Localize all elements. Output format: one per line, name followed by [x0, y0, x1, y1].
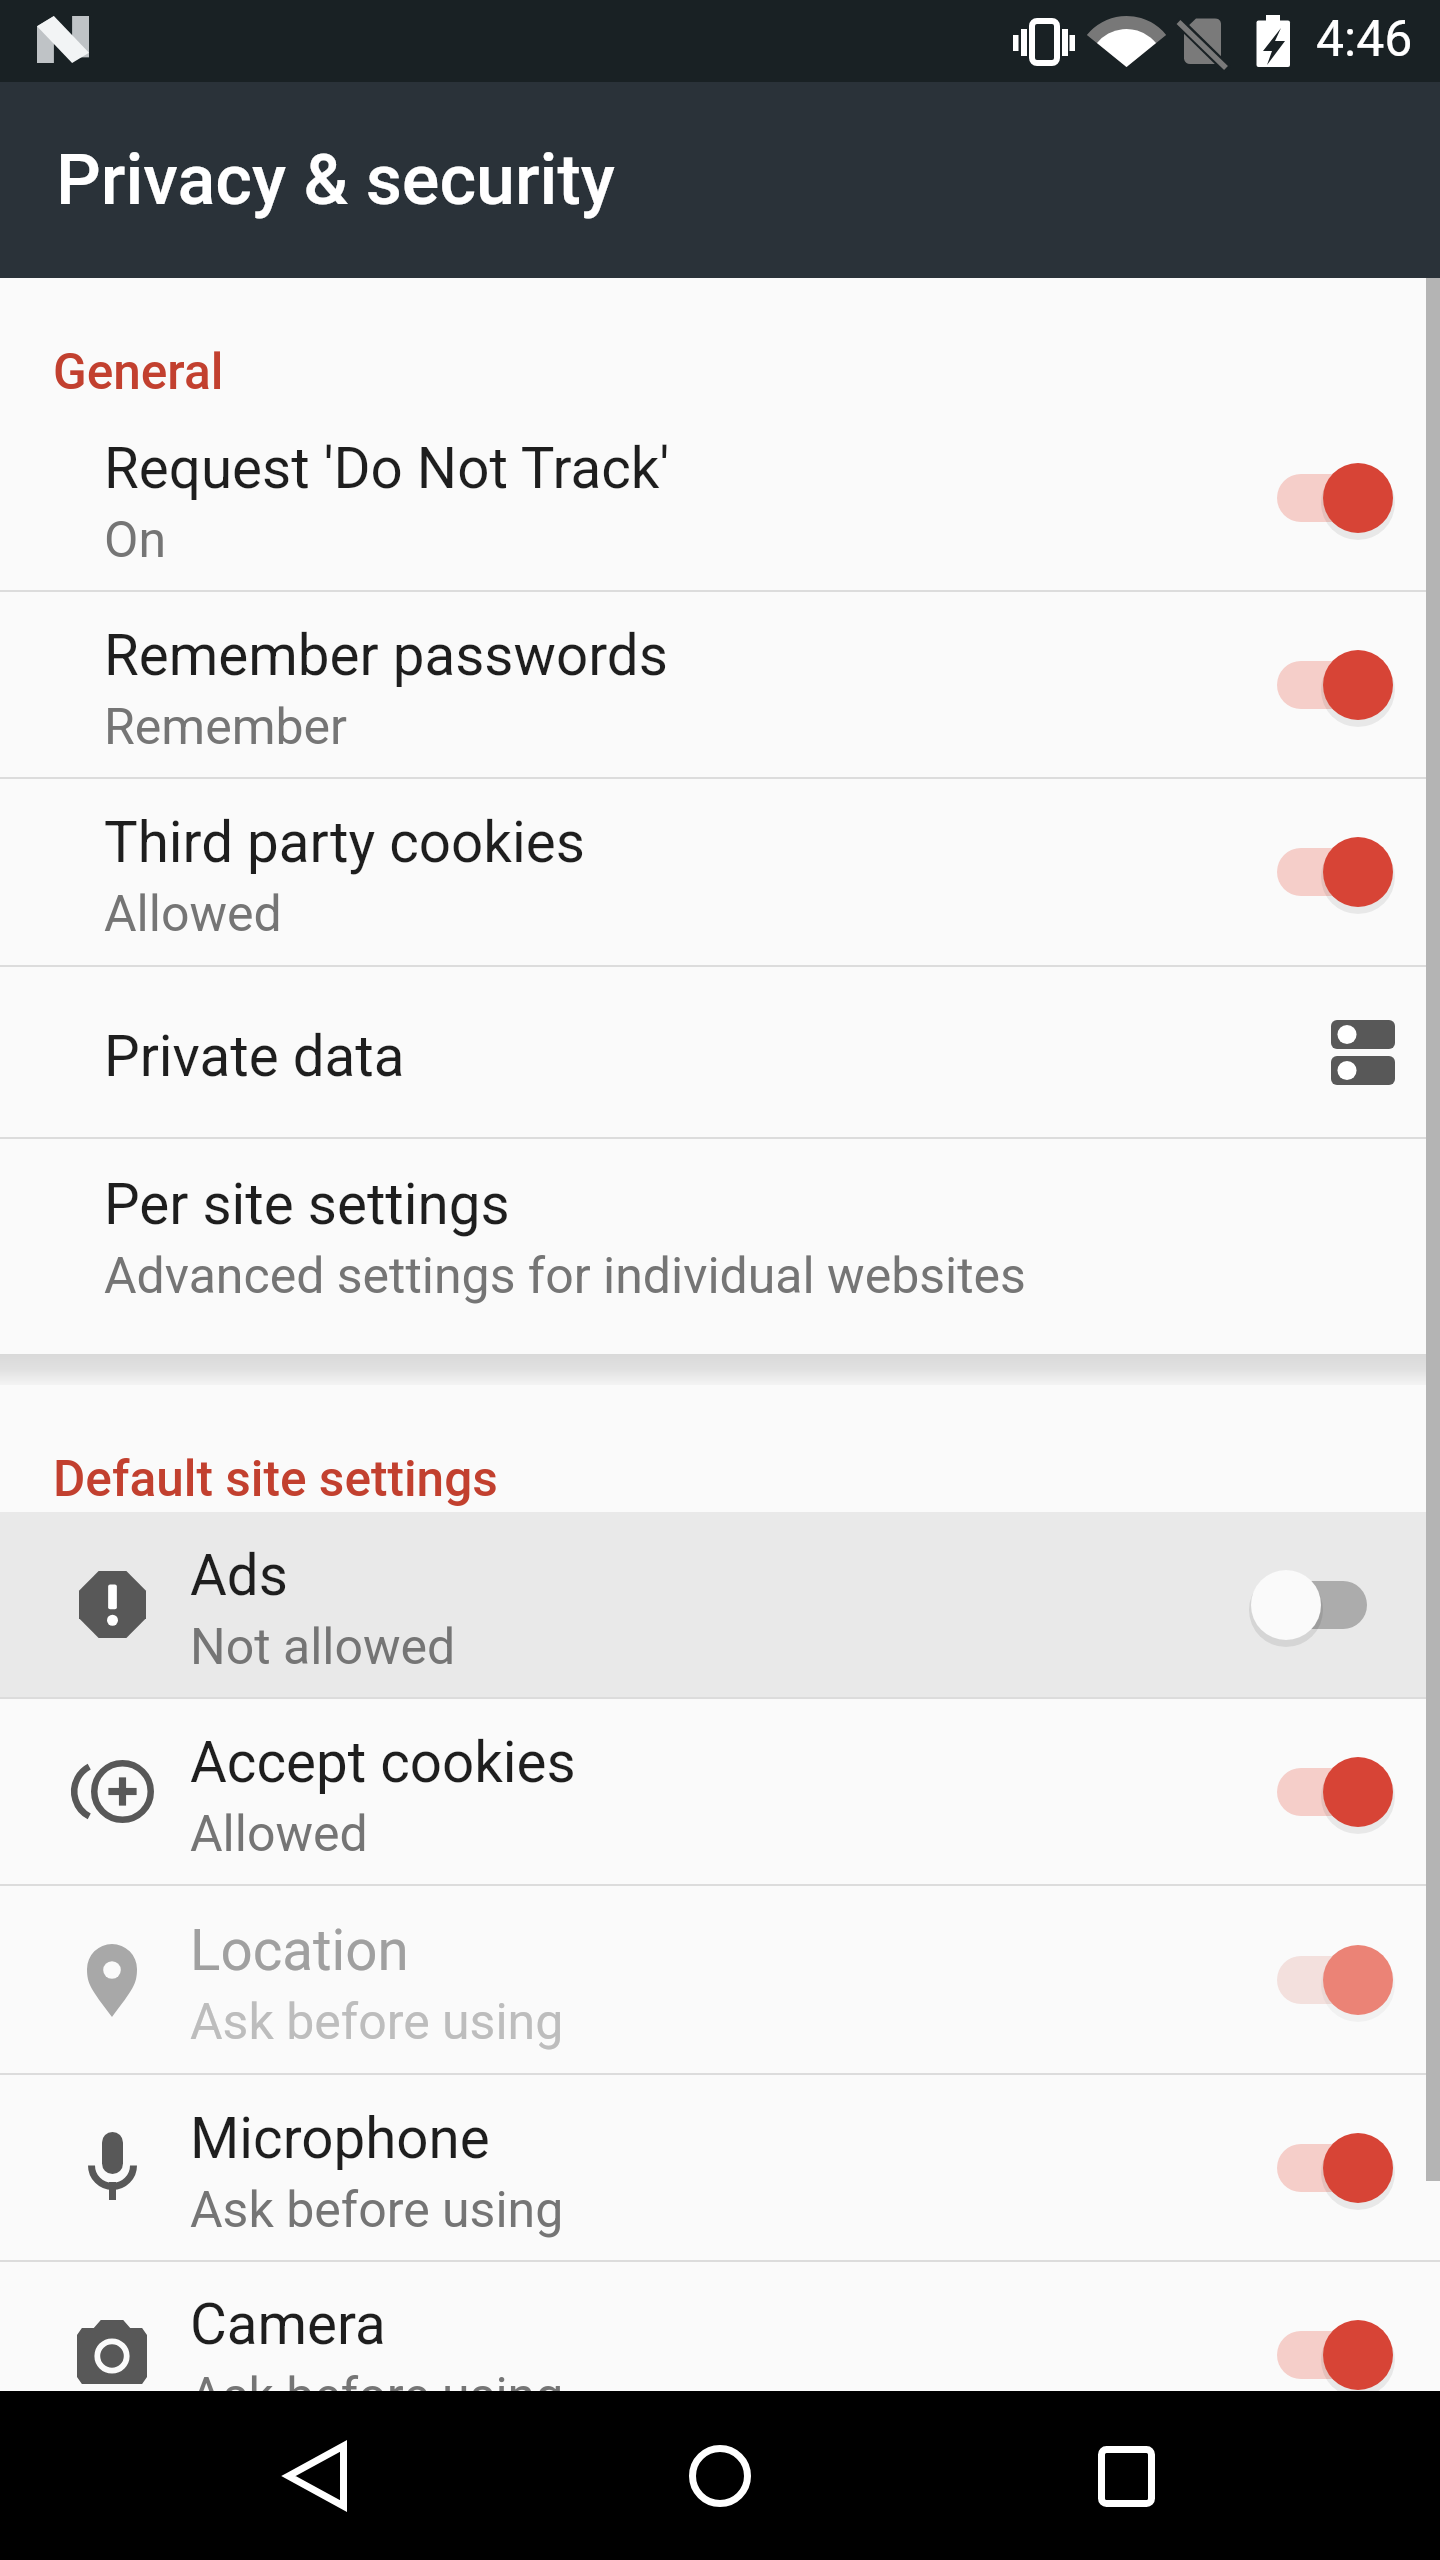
button[interactable]: Third party cookies: [0, 779, 1440, 965]
staticText: Ask before using: [190, 1993, 564, 2052]
button[interactable]: Camera: [0, 2262, 1440, 2391]
button[interactable]: Microphone on: [1253, 2128, 1408, 2208]
button[interactable]: Microphone: [0, 2075, 1440, 2260]
button[interactable]: Remember passwords: [0, 592, 1440, 777]
button[interactable]: Ads: [0, 1512, 1440, 1697]
staticText: Microphone: [190, 2106, 490, 2172]
staticText: Request 'Do Not Track': [104, 436, 670, 502]
staticText: Camera: [190, 2292, 386, 2358]
staticText: Third party cookies: [104, 810, 585, 876]
staticText: Advanced settings for individual website…: [104, 1247, 1026, 1306]
staticText: Allowed: [190, 1805, 368, 1864]
staticText: Ads: [190, 1543, 288, 1609]
staticText: Per site settings: [104, 1172, 510, 1238]
staticText: Ask before using: [190, 2181, 564, 2240]
staticText: Accept cookies: [190, 1730, 576, 1796]
button[interactable]: Home: [660, 2416, 780, 2536]
staticText: On: [104, 511, 167, 570]
button[interactable]: Accept cookies on: [1253, 1752, 1408, 1832]
button[interactable]: Accept cookies: [0, 1699, 1440, 1884]
button[interactable]: Camera on: [1253, 2315, 1408, 2395]
staticText: Privacy & security: [56, 139, 615, 221]
button[interactable]: Remember passwords on: [1253, 645, 1408, 725]
staticText: Remember passwords: [104, 623, 668, 689]
button[interactable]: Clear Private data: [1331, 1020, 1395, 1085]
staticText: Not allowed: [190, 1618, 456, 1677]
staticText: Ask before using: [190, 2367, 564, 2421]
staticText: 4:46: [1316, 10, 1413, 69]
button[interactable]: Back: [256, 2416, 376, 2536]
staticText: General: [53, 343, 224, 401]
button[interactable]: Location: [0, 1886, 1440, 2073]
staticText: Allowed: [104, 885, 282, 944]
staticText: Default site settings: [53, 1450, 498, 1508]
button[interactable]: Request 'Do Not Track': [0, 405, 1440, 590]
other: Private data: [1331, 1020, 1395, 1085]
staticText: Remember: [104, 698, 348, 757]
button[interactable]: Private data: [0, 967, 1440, 1137]
button[interactable]: Location on: [1253, 1940, 1408, 2020]
button[interactable]: Ads off: [1253, 1565, 1408, 1645]
staticText: Private data: [104, 1024, 405, 1090]
staticText: Location: [190, 1918, 409, 1984]
button[interactable]: Recents: [1066, 2416, 1186, 2536]
button[interactable]: Request 'Do Not Track' on: [1253, 458, 1408, 538]
button[interactable]: Per site settings: [0, 1139, 1440, 1354]
button[interactable]: Third party cookies on: [1253, 832, 1408, 912]
